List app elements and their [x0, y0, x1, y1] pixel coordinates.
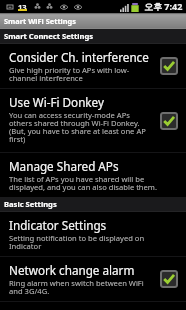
staticText: Smart WiFi Settings [4, 16, 76, 26]
staticText: You can access security-mode APs others … [9, 110, 152, 145]
staticText: Consider Ch. interference [9, 49, 149, 65]
staticText: Ring alarm when switch between WiFi and … [9, 278, 152, 297]
staticText: Setting notification to be displayed on … [9, 233, 161, 252]
button[interactable]: Consider Ch. interference [0, 44, 186, 89]
button[interactable]: Indicator Settings [0, 212, 186, 257]
button[interactable]: Toggle setting [160, 112, 178, 130]
staticText: Smart Connect Settings [4, 31, 94, 41]
button[interactable]: Use Wi-Fi Donkey [0, 89, 186, 153]
staticText: Network change alarm [9, 262, 135, 278]
button[interactable]: Toggle setting [160, 270, 178, 288]
button[interactable]: Toggle setting [160, 57, 178, 75]
button[interactable]: Manage Shared APs [0, 153, 186, 197]
staticText: Manage Shared APs [9, 158, 119, 174]
staticText: Indicator Settings [9, 217, 107, 233]
staticText: Basic Settings [4, 199, 57, 209]
button[interactable]: Smart WiFi Settings [0, 13, 186, 29]
button[interactable]: Network change alarm [0, 257, 186, 302]
staticText: Use Wi-Fi Donkey [9, 94, 104, 110]
staticText: Give high priority to APs with low-chann… [9, 65, 152, 84]
staticText: The list of APs you have shared will be … [9, 174, 161, 193]
staticText: 오후 7:42 [144, 0, 183, 12]
staticText: 13 [18, 2, 27, 11]
